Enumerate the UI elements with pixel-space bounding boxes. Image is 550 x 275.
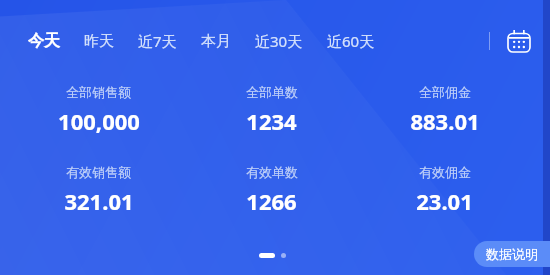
staticText: 1234: [246, 106, 297, 136]
button[interactable]: 数据说明: [474, 241, 550, 267]
button[interactable]: 有效佣金: [358, 164, 531, 216]
staticText: 近7天: [138, 31, 177, 51]
staticText: 今天: [28, 31, 60, 51]
staticText: 近30天: [255, 31, 303, 51]
staticText: 昨天: [84, 32, 114, 51]
button[interactable]: 有效销售额: [12, 164, 185, 216]
staticText: 有效销售额: [66, 164, 131, 180]
button[interactable]: 本月: [199, 28, 233, 55]
staticText: 883.01: [410, 106, 480, 136]
staticText: 全部单数: [246, 84, 298, 100]
button[interactable]: 近7天: [136, 27, 179, 55]
button[interactable]: 全部佣金: [358, 84, 531, 136]
button[interactable]: Select date range: [502, 24, 536, 58]
button[interactable]: 有效单数: [185, 164, 358, 216]
staticText: 本月: [201, 32, 231, 51]
button[interactable]: 近60天: [325, 27, 377, 55]
staticText: 321.01: [64, 186, 134, 216]
button[interactable]: 昨天: [82, 28, 116, 55]
button[interactable]: 近30天: [253, 27, 305, 55]
button[interactable]: 今天: [26, 27, 62, 55]
staticText: 有效佣金: [419, 164, 471, 180]
staticText: 全部佣金: [419, 84, 471, 100]
staticText: 1266: [246, 186, 297, 216]
staticText: 数据说明: [486, 246, 538, 262]
staticText: 有效单数: [246, 164, 298, 180]
button[interactable]: 全部销售额: [12, 84, 185, 136]
staticText: 全部销售额: [66, 84, 131, 100]
staticText: 近60天: [327, 31, 375, 51]
staticText: 23.01: [416, 186, 473, 216]
button[interactable]: 全部单数: [185, 84, 358, 136]
staticText: 100,000: [58, 106, 140, 136]
